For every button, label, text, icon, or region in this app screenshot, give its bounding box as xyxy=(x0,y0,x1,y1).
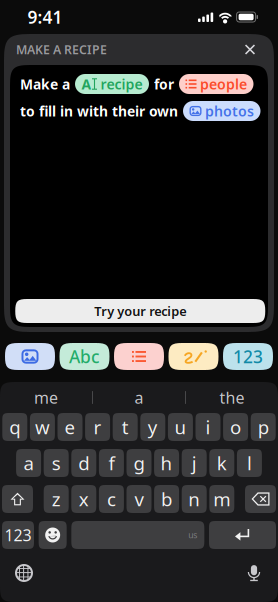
button[interactable]: e xyxy=(57,413,82,441)
staticText: a xyxy=(24,451,34,475)
staticText: people xyxy=(200,74,247,94)
button[interactable]: t xyxy=(113,413,138,441)
button[interactable]: Next keyboard xyxy=(4,559,44,587)
staticText: i xyxy=(205,415,210,439)
button[interactable]: a xyxy=(93,381,185,413)
staticText: t xyxy=(122,415,129,439)
staticText: c xyxy=(107,487,116,511)
staticText: MAKE A RECIPE xyxy=(16,41,107,58)
button[interactable]: z xyxy=(44,485,69,513)
staticText: l xyxy=(247,451,252,475)
staticText: u xyxy=(174,415,186,439)
staticText: 9:41 xyxy=(27,5,62,28)
button[interactable]: f xyxy=(99,449,124,477)
staticText: p xyxy=(258,415,269,439)
staticText: w xyxy=(35,415,50,439)
staticText: f xyxy=(108,451,114,475)
button[interactable]: w xyxy=(30,413,55,441)
button[interactable]: p xyxy=(251,413,276,441)
staticText: 123 xyxy=(233,345,263,368)
button[interactable]: v xyxy=(126,485,151,513)
button[interactable]: Return xyxy=(209,521,276,549)
button[interactable]: Close xyxy=(238,37,262,61)
button[interactable]: b xyxy=(154,485,179,513)
button[interactable]: Delete xyxy=(245,485,276,513)
staticText: e xyxy=(64,415,75,439)
staticText: z xyxy=(52,487,61,511)
button[interactable]: o xyxy=(223,413,248,441)
button[interactable]: Insert list xyxy=(114,343,164,370)
button[interactable]: Dictate xyxy=(234,559,274,587)
staticText: q xyxy=(9,415,20,439)
staticText: b xyxy=(161,487,172,511)
staticText: k xyxy=(217,451,227,475)
button[interactable]: Insert drawing xyxy=(168,343,218,370)
button[interactable]: Insert photo xyxy=(5,343,55,370)
button[interactable]: u xyxy=(168,413,193,441)
staticText: me xyxy=(34,387,58,408)
button[interactable]: Shift xyxy=(2,485,33,513)
staticText: 123 xyxy=(4,524,31,546)
staticText: Try your recipe xyxy=(94,302,186,320)
button[interactable]: y xyxy=(140,413,165,441)
staticText: m xyxy=(213,487,230,511)
staticText: photos xyxy=(205,101,254,121)
button[interactable]: d xyxy=(71,449,96,477)
staticText: a xyxy=(134,387,143,408)
button[interactable]: m xyxy=(209,485,234,513)
button[interactable]: g xyxy=(126,449,151,477)
button[interactable]: Emoji xyxy=(39,521,67,549)
staticText: to fill in with their own xyxy=(20,102,178,120)
button[interactable]: c xyxy=(99,485,124,513)
staticText: us xyxy=(188,529,197,541)
staticText: A xyxy=(81,75,91,93)
button[interactable]: r xyxy=(85,413,110,441)
staticText: Abc xyxy=(69,345,100,368)
staticText: the xyxy=(219,387,244,408)
staticText: o xyxy=(230,415,241,439)
staticText: r xyxy=(94,415,102,439)
staticText: s xyxy=(52,451,61,475)
button[interactable]: s xyxy=(44,449,69,477)
button[interactable]: the xyxy=(186,381,278,413)
button[interactable]: me xyxy=(0,381,92,413)
button[interactable]: x xyxy=(71,485,96,513)
button[interactable]: Space xyxy=(71,521,204,549)
button[interactable]: Insert text xyxy=(59,343,109,370)
button[interactable]: Try your recipe xyxy=(15,299,265,323)
button[interactable]: i xyxy=(195,413,220,441)
staticText: x xyxy=(79,487,89,511)
staticText: v xyxy=(134,487,143,511)
staticText: h xyxy=(161,451,173,475)
button[interactable]: a xyxy=(16,449,41,477)
staticText: g xyxy=(133,451,144,475)
button[interactable]: n xyxy=(182,485,207,513)
button[interactable]: 123 xyxy=(2,521,34,549)
button[interactable]: h xyxy=(154,449,179,477)
staticText: d xyxy=(78,451,89,475)
button[interactable]: k xyxy=(209,449,234,477)
staticText: for xyxy=(154,75,174,93)
button[interactable]: Insert numbers xyxy=(223,343,273,370)
button[interactable]: l xyxy=(237,449,262,477)
button[interactable]: j xyxy=(182,449,207,477)
staticText: Make a xyxy=(20,75,70,93)
staticText: y xyxy=(148,415,158,439)
staticText: n xyxy=(188,487,200,511)
button[interactable]: q xyxy=(2,413,27,441)
staticText: recipe xyxy=(100,74,142,94)
staticText: j xyxy=(192,451,197,475)
